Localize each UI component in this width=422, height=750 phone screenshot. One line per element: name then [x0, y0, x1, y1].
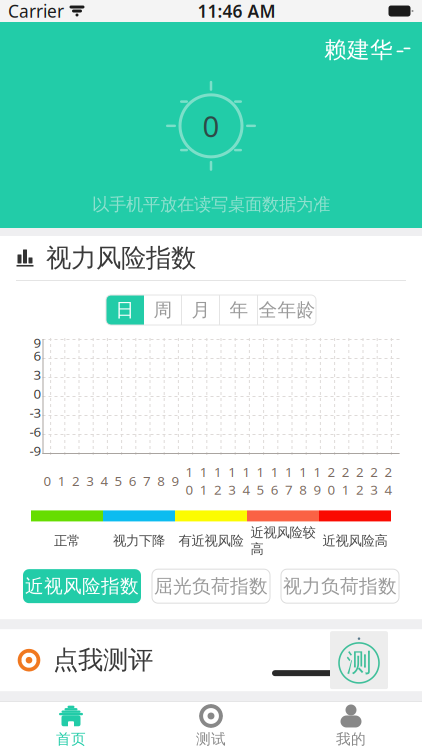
button[interactable]: 周: [144, 295, 182, 325]
staticText: 我的: [336, 730, 366, 748]
button[interactable]: 我的: [281, 702, 421, 750]
staticText: 1: [58, 472, 66, 490]
button[interactable]: 近视风险指数: [23, 569, 141, 603]
staticText: 近视风险较高: [250, 524, 315, 557]
staticText: 7: [143, 472, 151, 490]
staticText: 16: [271, 463, 279, 498]
staticText: 12: [214, 463, 222, 498]
staticText: 11:46 AM: [197, 0, 275, 22]
staticText: 23: [370, 463, 378, 498]
button[interactable]: 全年龄: [258, 295, 316, 325]
button[interactable]: 月: [182, 295, 220, 325]
staticText: 测: [346, 647, 371, 678]
staticText: 近视风险高: [322, 533, 387, 549]
button[interactable]: 点我测评: [0, 645, 153, 676]
staticText: 21: [342, 463, 350, 498]
staticText: 9: [171, 472, 179, 490]
staticText: 14: [242, 463, 250, 498]
staticText: 13: [228, 463, 236, 498]
staticText: 视力负荷指数: [283, 575, 397, 598]
staticText: 15: [257, 463, 265, 498]
button[interactable]: 首页: [1, 702, 141, 750]
staticText: 有近视风险: [178, 533, 243, 549]
staticText: 9: [33, 334, 41, 351]
staticText: 赖建华: [324, 36, 393, 64]
staticText: 2: [72, 472, 80, 490]
staticText: 年: [229, 298, 248, 321]
staticText: 视力风险指数: [46, 242, 196, 273]
button[interactable]: 年: [220, 295, 258, 325]
staticText: 10: [186, 463, 194, 498]
staticText: -9: [29, 442, 41, 459]
staticText: 5: [115, 472, 123, 490]
staticText: 6: [129, 472, 137, 490]
button[interactable]: 日: [106, 295, 144, 325]
staticText: 近视风险指数: [25, 575, 139, 598]
staticText: 视力下降: [113, 533, 165, 549]
staticText: 3: [86, 472, 94, 490]
staticText: 屈光负荷指数: [154, 575, 268, 598]
staticText: 8: [157, 472, 165, 490]
staticText: 以手机平放在读写桌面数据为准: [92, 194, 330, 215]
staticText: 日: [115, 298, 134, 321]
staticText: -3: [29, 404, 41, 421]
staticText: 0: [202, 106, 219, 145]
staticText: 6: [33, 347, 41, 364]
staticText: 19: [313, 463, 321, 498]
staticText: 11: [200, 463, 208, 498]
staticText: 正常: [54, 533, 80, 549]
staticText: 周: [153, 298, 172, 321]
staticText: 3: [33, 366, 41, 383]
staticText: 20: [328, 463, 336, 498]
button[interactable]: 视力负荷指数: [281, 569, 399, 603]
staticText: -6: [29, 423, 41, 440]
staticText: 首页: [56, 730, 86, 748]
staticText: 点我测评: [53, 645, 153, 676]
staticText: 22: [356, 463, 364, 498]
staticText: 月: [191, 298, 210, 321]
staticText: 全年龄: [258, 298, 315, 321]
button[interactable]: 屈光负荷指数: [152, 569, 270, 603]
staticText: Carrier: [8, 0, 64, 22]
staticText: 0: [33, 385, 41, 402]
staticText: 18: [299, 463, 307, 498]
staticText: 4: [100, 472, 108, 490]
staticText: 0: [44, 472, 52, 490]
staticText: 17: [285, 463, 293, 498]
button[interactable]: 测试: [141, 702, 281, 750]
button[interactable]: 赖建华: [312, 30, 422, 70]
staticText: 测试: [196, 730, 226, 748]
staticText: 24: [384, 463, 392, 498]
